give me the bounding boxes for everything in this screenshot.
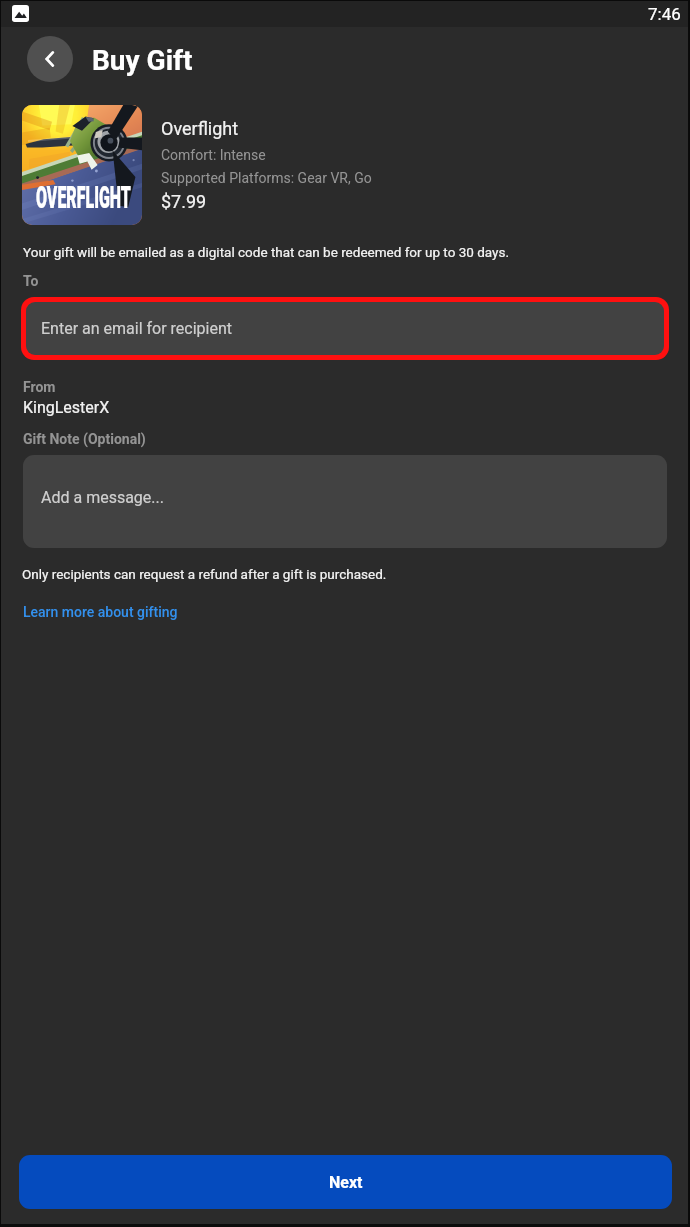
staticText: OVERFLIGHT (36, 179, 131, 215)
button[interactable]: Next (19, 1155, 672, 1209)
staticText: From (23, 379, 56, 395)
staticText: Comfort: Intense (161, 147, 266, 163)
staticText: KingLesterX (23, 398, 110, 417)
button[interactable]: Enter an email for recipient (26, 302, 664, 355)
staticText: Supported Platforms: Gear VR, Go (161, 170, 372, 186)
staticText: Buy Gift (92, 44, 193, 77)
button[interactable]: Add a message... (23, 455, 667, 548)
staticText: $7.99 (161, 191, 207, 212)
staticText: Only recipients can request a refund aft… (22, 566, 387, 582)
button[interactable]: Learn more about gifting (23, 604, 178, 620)
staticText: Gift Note (Optional) (23, 431, 146, 447)
staticText: Next (329, 1173, 363, 1192)
button[interactable]: Back (27, 36, 73, 82)
staticText: 7:46 (648, 4, 681, 24)
staticText: Add a message... (41, 488, 164, 507)
staticText: To (23, 273, 39, 289)
staticText: Your gift will be emailed as a digital c… (23, 244, 509, 260)
staticText: Overflight (161, 118, 239, 139)
staticText: Enter an email for recipient (41, 319, 233, 338)
